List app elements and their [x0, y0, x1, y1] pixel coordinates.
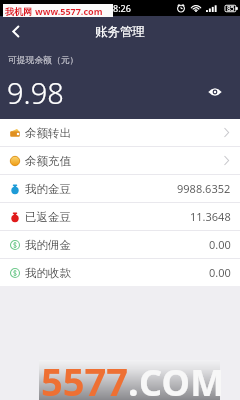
staticText: .	[128, 355, 139, 400]
button[interactable]: 已返金豆	[0, 203, 240, 230]
button[interactable]: 余额充值	[0, 147, 240, 174]
button[interactable]: 我的佣金	[0, 231, 240, 258]
staticText: 我的收款	[25, 266, 71, 280]
staticText: 已返金豆	[25, 210, 71, 224]
staticText: COM	[139, 358, 225, 400]
staticText: 8:26	[113, 2, 131, 14]
staticText: 0.00	[209, 237, 231, 252]
staticText: 11.3648	[190, 209, 231, 224]
staticText: www.5577.com	[35, 5, 103, 17]
button[interactable]: 我的金豆	[0, 175, 240, 202]
button[interactable]: 我的收款	[0, 259, 240, 286]
staticText: 5577	[41, 355, 128, 400]
staticText: 我的金豆	[25, 182, 71, 196]
staticText: 余额充值	[25, 154, 71, 168]
staticText: 我的佣金	[25, 238, 71, 252]
staticText: 可提现余额（元）	[8, 55, 79, 66]
staticText: 账务管理	[95, 24, 145, 40]
staticText: 我机网	[5, 6, 32, 17]
staticText: 余额转出	[25, 126, 71, 140]
staticText: 85	[227, 4, 235, 13]
staticText: 9.98	[7, 73, 64, 112]
button[interactable]: Back	[4, 19, 28, 43]
staticText: 0.00	[209, 265, 231, 280]
button[interactable]: 余额转出	[0, 119, 240, 146]
button[interactable]: Toggle balance visibility	[204, 81, 226, 103]
staticText: 9988.6352	[177, 181, 231, 196]
